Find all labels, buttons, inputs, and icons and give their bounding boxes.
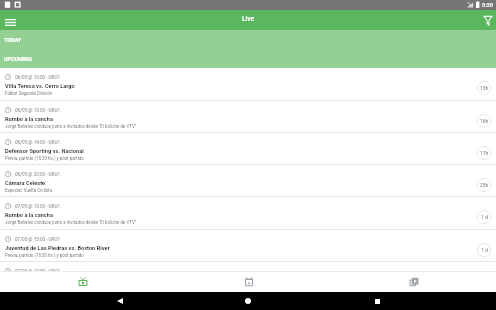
- staticText: Jorge Bañales conduce junto a invitados …: [5, 124, 137, 129]
- button[interactable]: 06/05 @ 14:00 - URU1: [0, 133, 496, 164]
- staticText: Jorge Bañales conduce junto a invitados …: [5, 220, 137, 225]
- button[interactable]: Recent apps: [368, 292, 386, 310]
- staticText: Previa, partido (15:30 hs.) y post parti…: [5, 156, 84, 161]
- button[interactable]: 07/05 @ 17:30 - URU1: [0, 262, 496, 271]
- button[interactable]: Open navigation menu: [0, 10, 20, 30]
- staticText: Juventud de Las Piedras vs. Boston River: [5, 245, 110, 252]
- staticText: 13h: [480, 85, 489, 91]
- staticText: UPCOMING: [4, 56, 33, 62]
- staticText: TODAY: [4, 37, 22, 43]
- staticText: 06/05 @ 10:00 - URU1: [15, 75, 60, 80]
- button[interactable]: 06/05 @ 13:00 - URU1: [0, 101, 496, 132]
- button[interactable]: 06/05 @ 10:00 - URU1: [0, 68, 496, 99]
- staticText: 06/05 @ 13:00 - URU1: [15, 108, 60, 113]
- staticText: Cámara Celeste: [5, 180, 46, 187]
- staticText: Especial: Vuelta Ciclista: [5, 188, 52, 193]
- staticText: Previa, partido (15:30 hs.) y post parti…: [5, 253, 84, 258]
- staticText: 1 d: [481, 247, 488, 253]
- staticText: 07/05 @ 15:00 - URU1: [15, 237, 60, 242]
- button[interactable]: 06/05 @ 20:00 - URU1: [0, 165, 496, 196]
- button[interactable]: Filter: [476, 10, 496, 30]
- staticText: Fútbol Segunda División: [5, 91, 53, 96]
- staticText: Rumbo a la cancha: [5, 212, 53, 219]
- staticText: 06/05 @ 20:00 - URU1: [15, 172, 60, 177]
- staticText: Defensor Sporting vs. Nacional: [5, 148, 84, 155]
- button[interactable]: Schedule: [166, 271, 331, 292]
- staticText: 07/05 @ 13:00 - URU1: [15, 204, 60, 209]
- staticText: 06/05 @ 14:00 - URU1: [15, 140, 60, 145]
- staticText: 17h: [480, 150, 489, 156]
- button[interactable]: 07/05 @ 15:00 - URU1: [0, 230, 496, 261]
- staticText: Villa Teresa vs. Cerro Largo: [5, 83, 75, 90]
- staticText: 8:38: [482, 2, 493, 9]
- staticText: Rumbo a la cancha: [5, 116, 53, 123]
- staticText: 1 d: [481, 214, 488, 220]
- button[interactable]: Back: [111, 292, 129, 310]
- button[interactable]: Library: [331, 271, 496, 292]
- button[interactable]: Live: [0, 271, 166, 292]
- staticText: Live: [242, 15, 255, 23]
- button[interactable]: 07/05 @ 13:00 - URU1: [0, 197, 496, 228]
- button[interactable]: Home: [239, 292, 257, 310]
- staticText: 23h: [480, 182, 489, 188]
- staticText: 07/05 @ 17:30 - URU1: [15, 269, 60, 271]
- staticText: 16h: [480, 118, 489, 124]
